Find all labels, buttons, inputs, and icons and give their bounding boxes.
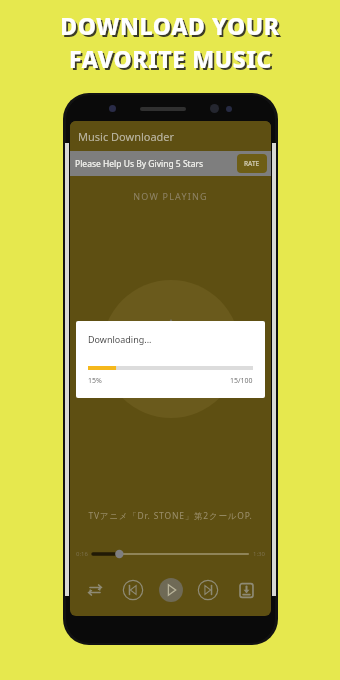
staticText: 1:30 xyxy=(253,550,265,558)
staticText: TVアニメ「Dr. STONE」第2クールOP. xyxy=(76,510,265,522)
button[interactable]: Download xyxy=(231,575,261,605)
button[interactable]: Play xyxy=(156,575,186,605)
staticText: Downloading... xyxy=(88,333,152,345)
button[interactable]: RATE xyxy=(237,154,267,173)
staticText: NOW PLAYING xyxy=(70,190,271,202)
staticText: DOWNLOAD YOUR xyxy=(60,10,280,41)
staticText: FAVORITE MUSIC xyxy=(69,43,272,74)
button[interactable]: 0:16 xyxy=(76,546,265,562)
button[interactable]: Music Downloader xyxy=(70,121,271,151)
button[interactable]: Previous xyxy=(118,575,148,605)
staticText: Music Downloader xyxy=(78,129,175,144)
staticText: 15/100 xyxy=(230,376,253,386)
staticText: RATE xyxy=(244,159,260,168)
staticText: DOWNLOAD YOUR xyxy=(62,12,282,43)
button[interactable]: Please Help Us By Giving 5 Stars xyxy=(70,151,271,176)
button[interactable]: Next xyxy=(193,575,223,605)
staticText: 0:16 xyxy=(76,550,88,558)
staticText: Please Help Us By Giving 5 Stars xyxy=(75,158,237,170)
button[interactable]: Repeat xyxy=(80,575,110,605)
staticText: FAVORITE MUSIC xyxy=(71,45,274,76)
staticText: 15% xyxy=(88,376,102,386)
button[interactable]: Downloading... xyxy=(76,321,265,398)
